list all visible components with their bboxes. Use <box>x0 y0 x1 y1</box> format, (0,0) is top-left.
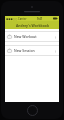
staticText: New Workout <box>14 34 53 39</box>
staticText: New Session <box>14 48 53 53</box>
staticText: ●●●○○ Carrier <box>6 17 27 21</box>
other: Open <box>53 35 57 39</box>
staticText: Andrey's Workbook <box>16 23 49 28</box>
button[interactable]: New Workout <box>5 32 59 41</box>
other: Open <box>53 49 57 53</box>
button[interactable]: New Session <box>5 46 59 55</box>
staticText: 9:41 <box>37 17 43 21</box>
